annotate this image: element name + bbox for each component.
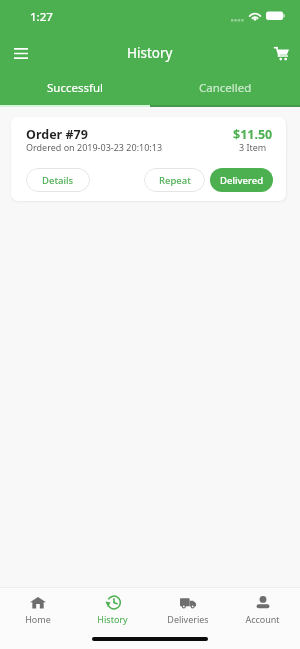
button[interactable]: Account xyxy=(225,588,300,632)
staticText: Successful xyxy=(47,80,103,96)
staticText: Delivered xyxy=(220,174,264,187)
staticText: Cancelled xyxy=(199,80,252,96)
staticText: Deliveries xyxy=(167,613,209,625)
staticText: $11.50 xyxy=(233,126,273,143)
button[interactable]: Home xyxy=(0,588,75,632)
staticText: 1:27 xyxy=(30,9,53,25)
button[interactable]: Deliveries xyxy=(150,588,225,632)
button[interactable]: Order #79 xyxy=(11,117,286,201)
staticText: Account xyxy=(245,613,280,625)
button[interactable]: Cancelled xyxy=(150,73,300,107)
staticText: Home xyxy=(25,613,51,625)
button[interactable]: Shopping cart xyxy=(265,37,298,70)
button[interactable]: Open navigation menu xyxy=(4,37,37,70)
staticText: Ordered on 2019-03-23 20:10:13 xyxy=(26,141,163,153)
staticText: Repeat xyxy=(159,174,191,187)
staticText: Details xyxy=(42,174,74,187)
button[interactable]: Repeat xyxy=(144,168,205,192)
staticText: Order #79 xyxy=(26,126,88,143)
button[interactable]: History xyxy=(75,588,150,632)
staticText: History xyxy=(127,44,173,62)
staticText: History xyxy=(97,613,128,625)
button[interactable]: Successful xyxy=(0,73,150,107)
button[interactable]: Details xyxy=(26,168,90,192)
button[interactable]: Delivered xyxy=(210,168,273,192)
staticText: 3 Item xyxy=(239,141,267,153)
